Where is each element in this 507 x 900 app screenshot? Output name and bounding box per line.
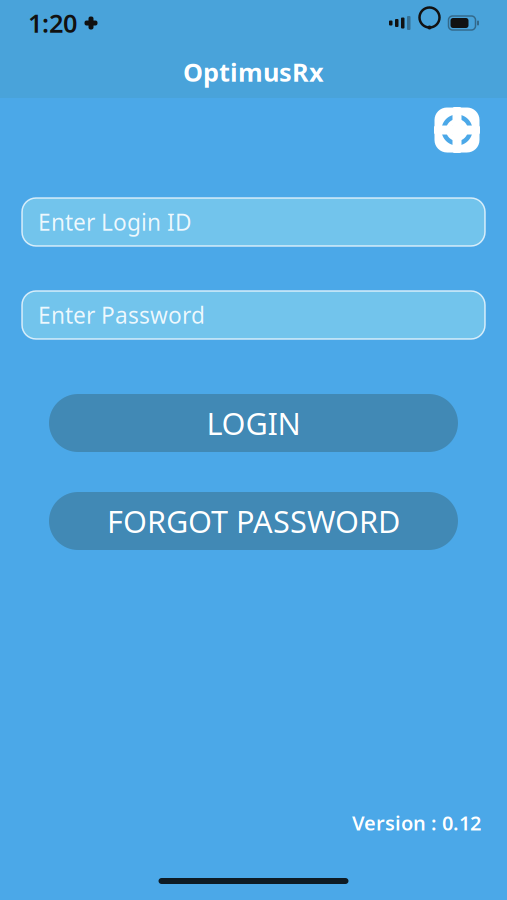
button[interactable]: Enter Password xyxy=(22,291,485,339)
staticText: LOGIN xyxy=(206,403,300,443)
button[interactable]: Settings xyxy=(429,104,485,156)
staticText: Enter Password xyxy=(38,300,205,330)
staticText: FORGOT PASSWORD xyxy=(107,501,400,541)
button[interactable]: LOGIN xyxy=(49,394,458,452)
button[interactable]: Enter Login ID xyxy=(22,198,485,246)
staticText: OptimusRx xyxy=(183,55,324,89)
button[interactable]: FORGOT PASSWORD xyxy=(49,492,458,550)
staticText: Version : 0.12 xyxy=(352,809,481,836)
staticText: 1:20 xyxy=(28,6,77,40)
staticText: Enter Login ID xyxy=(38,207,192,237)
